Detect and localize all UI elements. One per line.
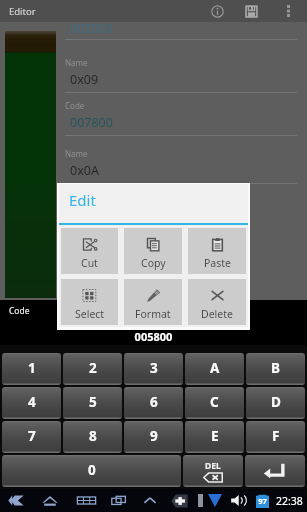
- staticText: 5: [89, 393, 97, 411]
- button[interactable]: 3: [124, 353, 183, 385]
- button[interactable]: Cut: [61, 228, 118, 274]
- button[interactable]: B: [246, 353, 305, 385]
- button[interactable]: Home: [38, 490, 62, 511]
- button[interactable]: Info: [206, 0, 229, 22]
- staticText: 8: [89, 427, 97, 445]
- staticText: 007800: [70, 114, 113, 131]
- staticText: Format: [135, 307, 171, 321]
- button[interactable]: Keyboard: [74, 490, 98, 511]
- button[interactable]: Save: [240, 0, 263, 22]
- staticText: 97: [256, 496, 269, 506]
- staticText: Name: [65, 57, 88, 68]
- staticText: Editor: [9, 5, 36, 18]
- staticText: 2: [89, 359, 97, 377]
- staticText: 6: [150, 393, 158, 411]
- button[interactable]: 6: [124, 387, 183, 419]
- button[interactable]: 4: [2, 387, 61, 419]
- button[interactable]: D: [246, 387, 305, 419]
- button[interactable]: Expand: [138, 490, 162, 511]
- staticText: 005800: [0, 329, 307, 344]
- staticText: E: [211, 427, 219, 445]
- button[interactable]: Delete: [188, 279, 246, 325]
- button[interactable]: F: [246, 421, 305, 453]
- staticText: Name: [65, 148, 88, 159]
- button[interactable]: Delete: [183, 455, 243, 487]
- button[interactable]: 5: [63, 387, 122, 419]
- button[interactable]: E: [185, 421, 244, 453]
- staticText: B: [271, 359, 280, 377]
- button[interactable]: Format: [124, 279, 182, 325]
- button[interactable]: Copy: [124, 228, 182, 274]
- staticText: 22:38: [276, 494, 303, 508]
- staticText: 0x0A: [70, 162, 99, 179]
- staticText: Edit: [69, 190, 96, 210]
- staticText: 4: [28, 393, 36, 411]
- button[interactable]: 7: [2, 421, 61, 453]
- staticText: D: [271, 393, 281, 411]
- button[interactable]: 1: [2, 353, 61, 385]
- staticText: 9: [150, 427, 158, 445]
- button[interactable]: Recent apps: [107, 490, 131, 511]
- staticText: A: [210, 359, 220, 377]
- staticText: Code: [9, 305, 30, 317]
- button[interactable]: 2: [63, 353, 122, 385]
- staticText: Copy: [141, 256, 166, 270]
- button[interactable]: Select: [61, 279, 118, 325]
- staticText: Paste: [204, 256, 231, 270]
- staticText: 0: [88, 461, 96, 479]
- button[interactable]: 9: [124, 421, 183, 453]
- staticText: Cut: [81, 256, 98, 270]
- button[interactable]: C: [185, 387, 244, 419]
- staticText: Select: [75, 307, 105, 321]
- staticText: 3: [150, 359, 158, 377]
- button[interactable]: More options: [278, 0, 298, 22]
- button[interactable]: Enter: [245, 455, 305, 487]
- button[interactable]: A: [185, 353, 244, 385]
- staticText: 1: [28, 359, 36, 377]
- staticText: C: [210, 393, 219, 411]
- button[interactable]: 0: [2, 455, 181, 487]
- staticText: 7: [28, 427, 36, 445]
- staticText: F: [272, 427, 280, 445]
- button[interactable]: Back: [4, 490, 28, 511]
- staticText: DEL: [205, 460, 221, 472]
- staticText: Code: [65, 100, 85, 111]
- staticText: 003000: [70, 20, 113, 37]
- staticText: Delete: [201, 307, 233, 321]
- button[interactable]: Paste: [188, 228, 246, 274]
- button[interactable]: 8: [63, 421, 122, 453]
- staticText: 0x09: [70, 71, 99, 88]
